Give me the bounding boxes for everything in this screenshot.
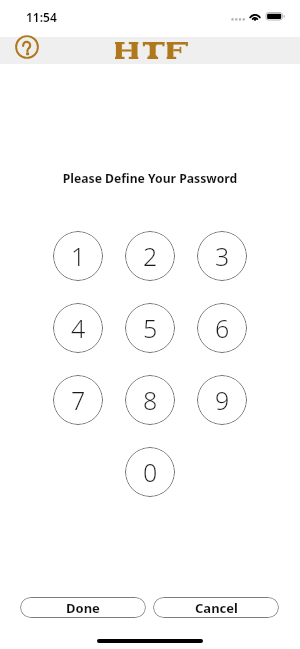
staticText: 1 [71, 239, 86, 273]
staticText: 6 [215, 311, 230, 345]
button[interactable]: 6 [197, 303, 247, 353]
button[interactable]: 3 [197, 231, 247, 281]
button[interactable]: 5 [125, 303, 175, 353]
staticText: 3 [215, 239, 230, 273]
button[interactable]: 9 [197, 375, 247, 425]
button[interactable]: Cancel [153, 597, 279, 618]
button[interactable]: 8 [125, 375, 175, 425]
staticText: 0 [143, 455, 158, 489]
button[interactable]: 7 [53, 375, 103, 425]
button[interactable]: 0 [125, 447, 175, 497]
button[interactable]: Done [20, 597, 146, 618]
staticText: 11:54 [26, 9, 57, 25]
staticText: 8 [143, 383, 158, 417]
button[interactable]: 1 [53, 231, 103, 281]
staticText: 9 [215, 383, 230, 417]
staticText: 2 [143, 239, 158, 273]
button[interactable]: 4 [53, 303, 103, 353]
button[interactable]: 2 [125, 231, 175, 281]
staticText: 5 [143, 311, 158, 345]
button[interactable]: Help [15, 35, 39, 59]
staticText: 7 [71, 383, 86, 417]
staticText: Please Define Your Password [0, 170, 300, 187]
staticText: Done [66, 599, 100, 617]
staticText: Cancel [195, 599, 238, 617]
staticText: 4 [71, 311, 86, 345]
